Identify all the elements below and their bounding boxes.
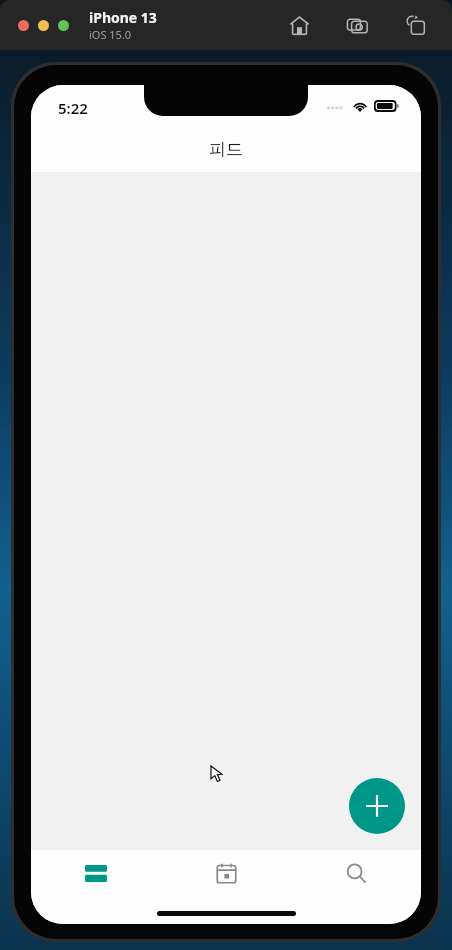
staticText: iOS 15.0 xyxy=(89,27,132,42)
button[interactable]: Add xyxy=(349,778,405,834)
button[interactable]: Search xyxy=(291,850,421,896)
staticText: 피드 xyxy=(209,139,243,160)
button[interactable]: Home xyxy=(284,10,314,40)
button[interactable]: Rotate xyxy=(400,10,430,40)
button[interactable]: Calendar xyxy=(161,850,291,896)
button[interactable] xyxy=(18,20,29,31)
button[interactable] xyxy=(58,20,69,31)
staticText: 5:22 xyxy=(58,98,88,118)
button[interactable] xyxy=(38,20,49,31)
button[interactable]: Screenshot xyxy=(342,10,372,40)
staticText: iPhone 13 xyxy=(89,8,157,27)
button[interactable]: Feed xyxy=(31,850,161,896)
